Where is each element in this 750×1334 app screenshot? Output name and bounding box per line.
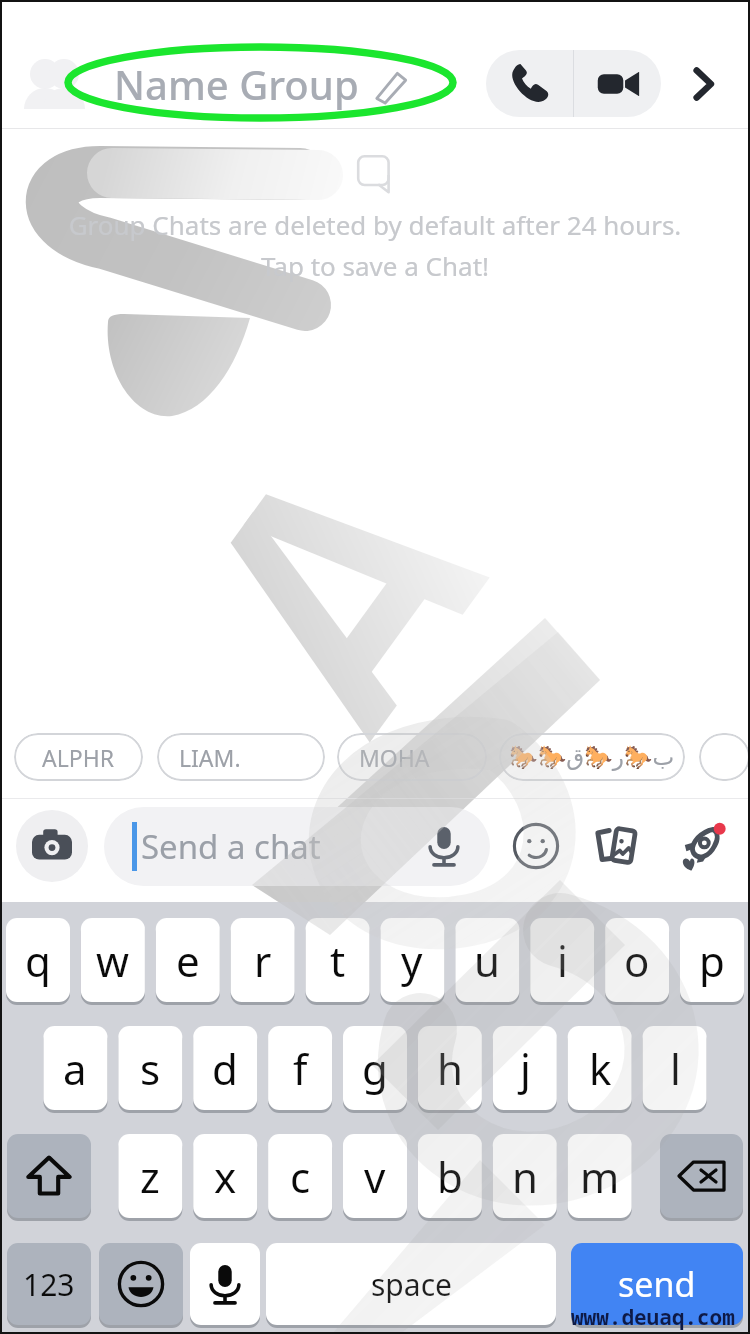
button[interactable]: y — [380, 918, 444, 1002]
button[interactable]: q — [6, 918, 70, 1002]
staticText: Name Group — [114, 57, 359, 111]
button[interactable]: k — [568, 1026, 632, 1110]
button[interactable]: Backspace — [660, 1134, 743, 1218]
staticText: send — [618, 1261, 696, 1307]
staticText: n — [512, 1148, 538, 1205]
button[interactable]: Memories — [582, 810, 654, 882]
staticText: u — [474, 932, 500, 989]
button[interactable]: send — [571, 1243, 743, 1325]
button[interactable]: e — [156, 918, 220, 1002]
button[interactable]: d — [193, 1026, 257, 1110]
staticText: w — [96, 932, 130, 989]
button[interactable]: Shift — [7, 1134, 91, 1218]
staticText: j — [520, 1040, 531, 1097]
button[interactable]: Emoji — [99, 1243, 183, 1325]
staticText: l — [670, 1040, 681, 1097]
button[interactable]: Voice note — [408, 810, 480, 882]
staticText: r — [254, 932, 272, 989]
staticText: a — [63, 1040, 87, 1097]
staticText: i — [557, 932, 568, 989]
staticText: c — [290, 1148, 311, 1205]
staticText: k — [589, 1040, 612, 1097]
staticText: space — [371, 1264, 452, 1305]
staticText: q — [25, 932, 51, 989]
staticText: v — [364, 1148, 386, 1205]
staticText: g — [362, 1040, 388, 1097]
button[interactable]: LIAM. — [157, 733, 325, 781]
button[interactable]: s — [118, 1026, 182, 1110]
button[interactable]: Call — [486, 50, 573, 117]
staticText: f — [293, 1040, 308, 1097]
button[interactable]: g — [343, 1026, 407, 1110]
button[interactable]: j — [493, 1026, 557, 1110]
staticText: d — [212, 1040, 238, 1097]
button[interactable]: a — [43, 1026, 107, 1110]
button[interactable]: x — [193, 1134, 257, 1218]
staticText: h — [437, 1040, 463, 1097]
button[interactable] — [699, 733, 750, 781]
staticText: s — [140, 1040, 161, 1097]
button[interactable]: t — [306, 918, 370, 1002]
staticText: LIAM. — [179, 742, 241, 773]
button[interactable]: z — [118, 1134, 182, 1218]
staticText: m — [580, 1148, 620, 1205]
button[interactable]: o — [605, 918, 669, 1002]
button[interactable]: Camera — [16, 810, 88, 882]
button[interactable]: c — [268, 1134, 332, 1218]
staticText: o — [624, 932, 650, 989]
button[interactable]: Dictate — [190, 1243, 260, 1325]
staticText: y — [401, 932, 423, 989]
button[interactable]: w — [81, 918, 145, 1002]
button[interactable]: f — [268, 1026, 332, 1110]
button[interactable]: Name Group — [114, 57, 411, 111]
button[interactable]: h — [418, 1026, 482, 1110]
button[interactable]: 🐎🐎ب🐎ر🐎ق — [499, 733, 685, 781]
button[interactable]: l — [643, 1026, 707, 1110]
button[interactable]: Stickers — [500, 810, 572, 882]
staticText: ALPHR — [42, 742, 115, 773]
staticText: e — [176, 932, 200, 989]
button[interactable]: ALPHR — [14, 733, 143, 781]
button[interactable]: space — [266, 1243, 556, 1325]
button[interactable]: p — [680, 918, 744, 1002]
staticText: z — [140, 1148, 160, 1205]
button[interactable]: Forward — [675, 56, 731, 112]
staticText: 123 — [23, 1264, 75, 1305]
staticText: www.deuaq.com — [571, 1303, 735, 1332]
button[interactable]: m — [568, 1134, 632, 1218]
button[interactable]: n — [493, 1134, 557, 1218]
button[interactable]: v — [343, 1134, 407, 1218]
button[interactable]: u — [455, 918, 519, 1002]
staticText: Group Chats are deleted by default after… — [0, 207, 750, 284]
button[interactable]: Rocket — [666, 810, 738, 882]
staticText: p — [699, 932, 725, 989]
button[interactable]: b — [418, 1134, 482, 1218]
staticText: 🐎🐎ب🐎ر🐎ق — [509, 744, 675, 771]
staticText: Send a chat — [141, 824, 321, 869]
button[interactable]: r — [231, 918, 295, 1002]
staticText: b — [437, 1148, 463, 1205]
button[interactable]: Send a chat — [104, 807, 490, 886]
staticText: MOHA — [359, 742, 430, 773]
button[interactable]: MOHA — [337, 733, 487, 781]
button[interactable]: 123 — [7, 1243, 91, 1325]
button[interactable]: i — [530, 918, 594, 1002]
staticText: x — [214, 1148, 237, 1205]
button[interactable]: Video call — [574, 50, 661, 117]
staticText: t — [330, 932, 346, 989]
